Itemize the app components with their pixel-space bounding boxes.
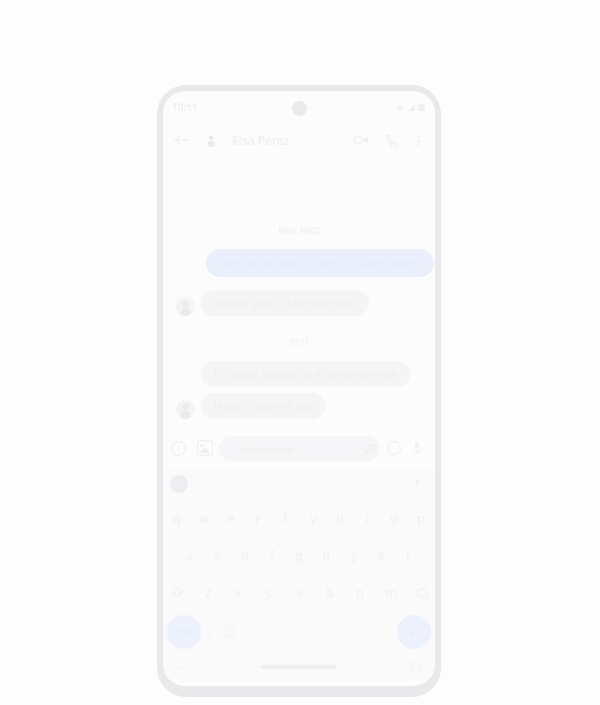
button[interactable]: Gallery xyxy=(191,434,219,462)
staticText: 10:11 xyxy=(172,100,198,114)
button[interactable]: Enter xyxy=(397,615,431,649)
button[interactable]: Symbols xyxy=(167,615,201,649)
staticText: g xyxy=(295,546,303,564)
staticText: Elsa Perez xyxy=(232,132,290,148)
button[interactable]: Google xyxy=(170,475,188,493)
